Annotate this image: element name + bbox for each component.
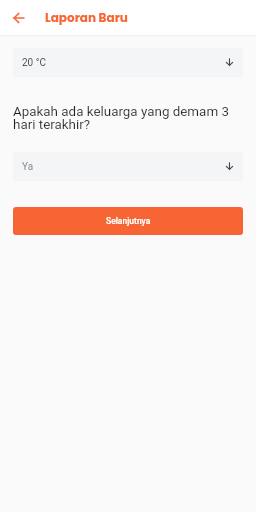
button[interactable]: Ya xyxy=(13,152,243,181)
staticText: Laporan Baru xyxy=(45,9,128,26)
staticText: Ya xyxy=(22,161,34,173)
other: Expand xyxy=(222,57,234,69)
other: Expand xyxy=(222,161,234,173)
button[interactable]: 20 °C xyxy=(13,48,243,77)
staticText: Apakah ada keluarga yang demam 3 hari te… xyxy=(13,104,243,133)
staticText: 20 °C xyxy=(22,57,46,69)
staticText: Selanjutnya xyxy=(106,216,151,226)
button[interactable]: Back xyxy=(9,8,29,28)
button[interactable]: Selanjutnya xyxy=(13,207,243,235)
